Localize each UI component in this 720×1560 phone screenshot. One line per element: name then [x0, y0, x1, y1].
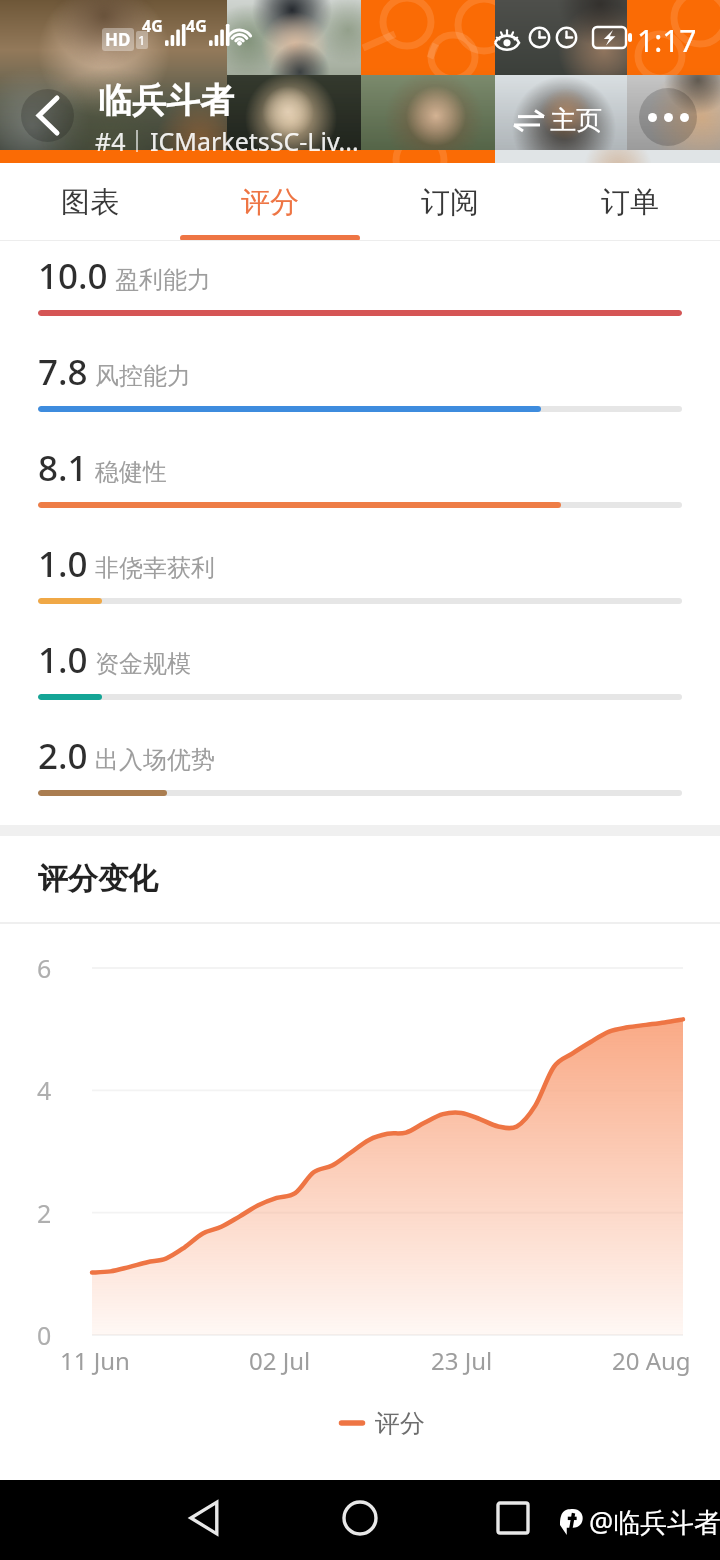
- button[interactable]: 2.0: [0, 721, 720, 817]
- staticText: @临兵斗者: [589, 1503, 720, 1540]
- staticText: 4G: [186, 15, 207, 37]
- staticText: ICMarketsSC-Liv...: [150, 124, 359, 158]
- button[interactable]: 10.0: [0, 241, 720, 337]
- button[interactable]: Back: [21, 89, 74, 142]
- button[interactable]: 1.0: [0, 529, 720, 625]
- staticText: 11 Jun: [60, 1344, 130, 1377]
- button[interactable]: Back: [172, 1484, 240, 1552]
- staticText: 2.0: [38, 732, 88, 780]
- staticText: 盈利能力: [115, 265, 211, 295]
- button[interactable]: More options: [639, 88, 697, 146]
- staticText: HD: [105, 28, 131, 51]
- button[interactable]: 8.1: [0, 433, 720, 529]
- staticText: 图表: [61, 184, 119, 221]
- button[interactable]: 订阅: [360, 163, 540, 241]
- staticText: 出入场优势: [95, 745, 215, 775]
- staticText: 1.0: [38, 636, 88, 684]
- button[interactable]: 评分: [180, 163, 360, 241]
- staticText: 临兵斗者: [98, 79, 234, 122]
- button[interactable]: 1.0: [0, 625, 720, 721]
- staticText: 评分: [241, 184, 299, 221]
- staticText: 8.1: [38, 444, 88, 492]
- button[interactable]: 7.8: [0, 337, 720, 433]
- staticText: 2: [37, 1196, 52, 1230]
- staticText: 20 Aug: [612, 1344, 691, 1377]
- staticText: 02 Jul: [249, 1344, 311, 1377]
- staticText: 4G: [142, 15, 163, 37]
- staticText: 资金规模: [95, 649, 191, 679]
- staticText: 10.0: [38, 252, 108, 300]
- staticText: 4: [37, 1073, 52, 1107]
- staticText: 1.0: [38, 540, 88, 588]
- staticText: 1:17: [637, 20, 697, 61]
- staticText: 评分: [375, 1408, 425, 1439]
- staticText: 风控能力: [95, 361, 191, 391]
- button[interactable]: 订单: [540, 163, 720, 241]
- staticText: 评分变化: [38, 860, 158, 898]
- button[interactable]: 图表: [0, 163, 180, 241]
- staticText: 1: [138, 31, 146, 49]
- button[interactable]: Home: [326, 1484, 394, 1552]
- staticText: 0: [37, 1318, 52, 1352]
- staticText: 非侥幸获利: [95, 553, 215, 583]
- staticText: 主页: [550, 104, 602, 137]
- staticText: #4: [95, 124, 126, 158]
- staticText: 23 Jul: [431, 1344, 493, 1377]
- button[interactable]: Recents: [479, 1484, 547, 1552]
- staticText: 6: [37, 951, 52, 985]
- staticText: 7.8: [38, 348, 88, 396]
- staticText: 稳健性: [95, 457, 167, 487]
- staticText: 订阅: [421, 184, 479, 221]
- staticText: 订单: [601, 184, 659, 221]
- button[interactable]: 主页: [508, 96, 608, 145]
